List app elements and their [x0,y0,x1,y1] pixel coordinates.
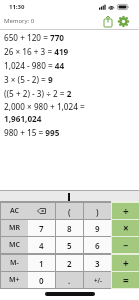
button[interactable]: MR [1,220,28,236]
staticText: ( [68,206,71,217]
button[interactable]: 2 [56,255,83,271]
button[interactable]: + [112,255,139,271]
staticText: 6 [95,240,100,251]
staticText: 8 [67,223,72,234]
button[interactable]: ( [56,203,83,219]
staticText: 3 × (5 - 2) = 9 [4,74,53,85]
staticText: 11:30 [9,3,25,11]
button[interactable]: 5 [56,237,83,253]
staticText: × [123,221,129,235]
staticText: M+ [9,275,20,285]
staticText: 2 [67,258,72,269]
button[interactable]: +/- [84,272,111,288]
button[interactable]: 8 [56,220,83,236]
staticText: − [123,239,129,251]
staticText: 2,000 × 980 + 1,024 = [4,101,85,112]
button[interactable]: = [112,272,139,288]
staticText: 0 [39,275,44,286]
button[interactable]: AC [1,203,28,219]
staticText: 980 + 15 = 995 [4,127,60,138]
staticText: ) [96,206,99,217]
staticText: . [68,275,71,286]
staticText: 9 [95,223,100,234]
button[interactable]: . [56,272,83,288]
button[interactable]: M+ [1,272,28,288]
button[interactable]: 7 [28,220,55,236]
button[interactable]: 6 [84,237,111,253]
button[interactable]: 1 [28,255,55,271]
staticText: + [123,256,129,270]
button[interactable]: M- [1,255,28,271]
button[interactable]: ) [84,203,111,219]
button[interactable]: 4 [28,237,55,253]
staticText: 26 × 16 + 3 = 419 [4,46,69,57]
button[interactable]: 0 [28,272,55,288]
staticText: 1 [39,258,44,269]
staticText: +/- [94,276,102,284]
button[interactable] [117,15,130,28]
staticText: 650 + 120 = 770 [4,32,65,43]
staticText: AC [10,206,20,216]
staticText: ÷ [123,204,129,218]
staticText: = [123,273,129,287]
button[interactable]: 9 [84,220,111,236]
staticText: 5 [67,240,72,251]
staticText: 7 [39,223,44,234]
button[interactable]: 3 [84,255,111,271]
staticText: MR [9,223,21,233]
button[interactable]: ÷ [112,203,139,219]
staticText: ((5 + 2) - 3) ÷ 2 = 2 [4,88,72,99]
button[interactable]: × [112,220,139,236]
button[interactable]: MC [1,237,28,253]
staticText: MC [9,240,20,250]
staticText: 4 [39,240,44,251]
staticText: 1,024 - 980 = 44 [4,60,65,71]
button[interactable]: − [112,237,139,253]
staticText: Memory: 0 [4,17,35,25]
button[interactable] [28,203,55,219]
staticText: 1,961,024 [4,113,42,124]
button[interactable] [102,15,114,28]
staticText: M- [10,258,19,268]
staticText: 3 [95,258,100,269]
